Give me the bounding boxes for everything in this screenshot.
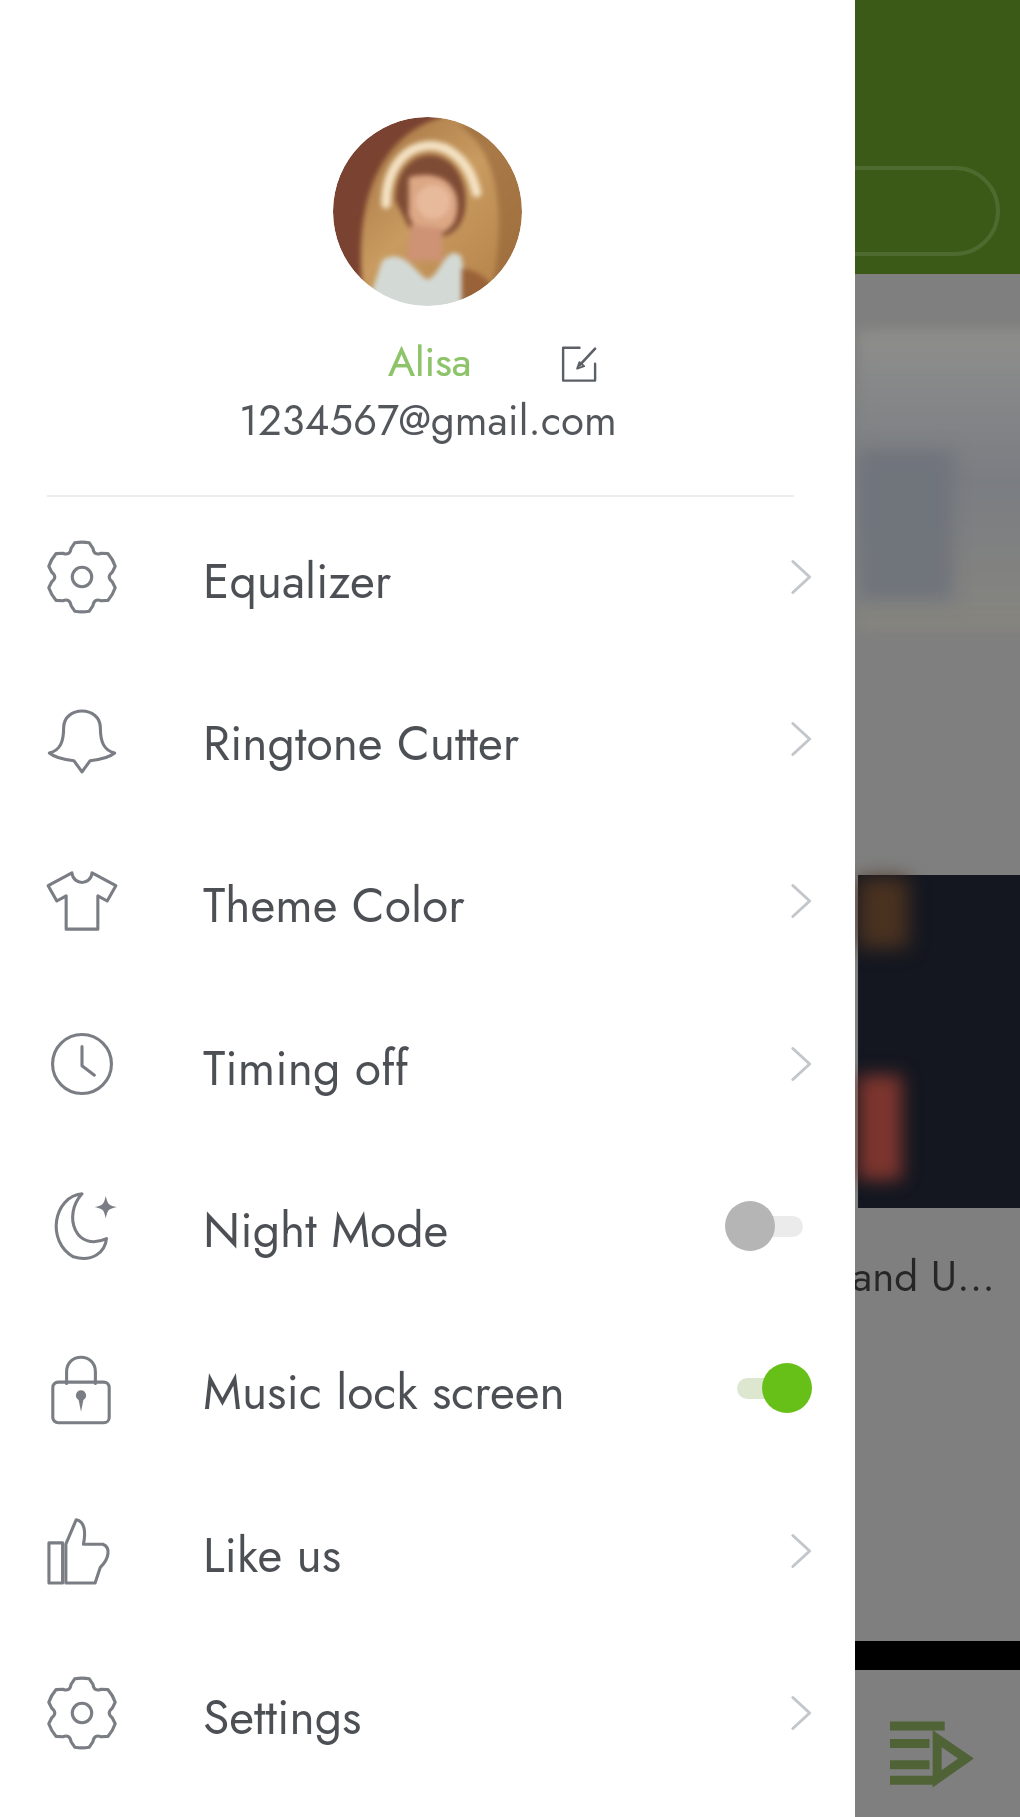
button[interactable]: Ringtone Cutter (0, 658, 855, 820)
staticText: Settings (203, 1683, 362, 1752)
staticText: Alisa (388, 332, 472, 391)
staticText: Equalizer (203, 547, 392, 616)
staticText: Night Mode (203, 1196, 449, 1265)
button[interactable]: Switch on (725, 1362, 813, 1414)
staticText: Ringtone Cutter (203, 709, 520, 778)
button[interactable]: Timing off (0, 983, 855, 1145)
button[interactable]: Like us (0, 1470, 855, 1632)
staticText: Music lock screen (203, 1358, 565, 1427)
button[interactable]: Switch off (725, 1200, 813, 1252)
button[interactable]: Profile photo (333, 117, 522, 306)
button[interactable]: Night Mode (0, 1145, 855, 1307)
staticText: and U... (852, 1246, 995, 1307)
staticText: Like us (203, 1521, 342, 1590)
staticText: 1234567@gmail.com (239, 390, 617, 451)
button[interactable]: Edit profile (560, 343, 599, 383)
staticText: Timing off (203, 1034, 409, 1103)
button[interactable]: Settings (0, 1632, 855, 1794)
button[interactable]: Equalizer (0, 496, 855, 658)
button[interactable]: Music lock screen (0, 1307, 855, 1469)
staticText: Theme Color (203, 871, 465, 940)
button[interactable]: Theme Color (0, 820, 855, 982)
